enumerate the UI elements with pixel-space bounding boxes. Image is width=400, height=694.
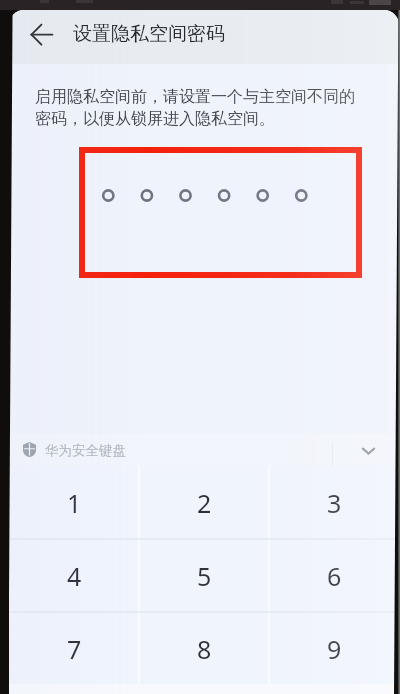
- staticText: 8: [197, 632, 212, 666]
- button[interactable]: Hide keyboard: [338, 434, 399, 466]
- staticText: 7: [67, 632, 82, 666]
- staticText: 启用隐私空间前，请设置一个与主空间不同的密码，以便从锁屏进入隐私空间。: [35, 87, 367, 129]
- button[interactable]: 5: [139, 539, 269, 612]
- button[interactable]: 3: [269, 466, 399, 539]
- staticText: 1: [67, 486, 82, 520]
- staticText: 9: [327, 632, 342, 666]
- button[interactable]: 2: [139, 466, 269, 539]
- button[interactable]: 6: [269, 539, 399, 612]
- button[interactable]: 7: [9, 612, 139, 685]
- button[interactable]: Back: [20, 12, 64, 60]
- staticText: 5: [197, 559, 212, 593]
- staticText: 华为安全键盘: [45, 442, 126, 459]
- staticText: 3: [327, 486, 342, 520]
- staticText: 2: [197, 486, 212, 520]
- staticText: 6: [327, 559, 342, 593]
- button[interactable]: 8: [139, 612, 269, 685]
- button[interactable]: 1: [9, 466, 139, 539]
- staticText: 设置隐私空间密码: [73, 22, 225, 46]
- staticText: 4: [67, 559, 82, 593]
- button[interactable]: 9: [269, 612, 399, 685]
- button[interactable]: 4: [9, 539, 139, 612]
